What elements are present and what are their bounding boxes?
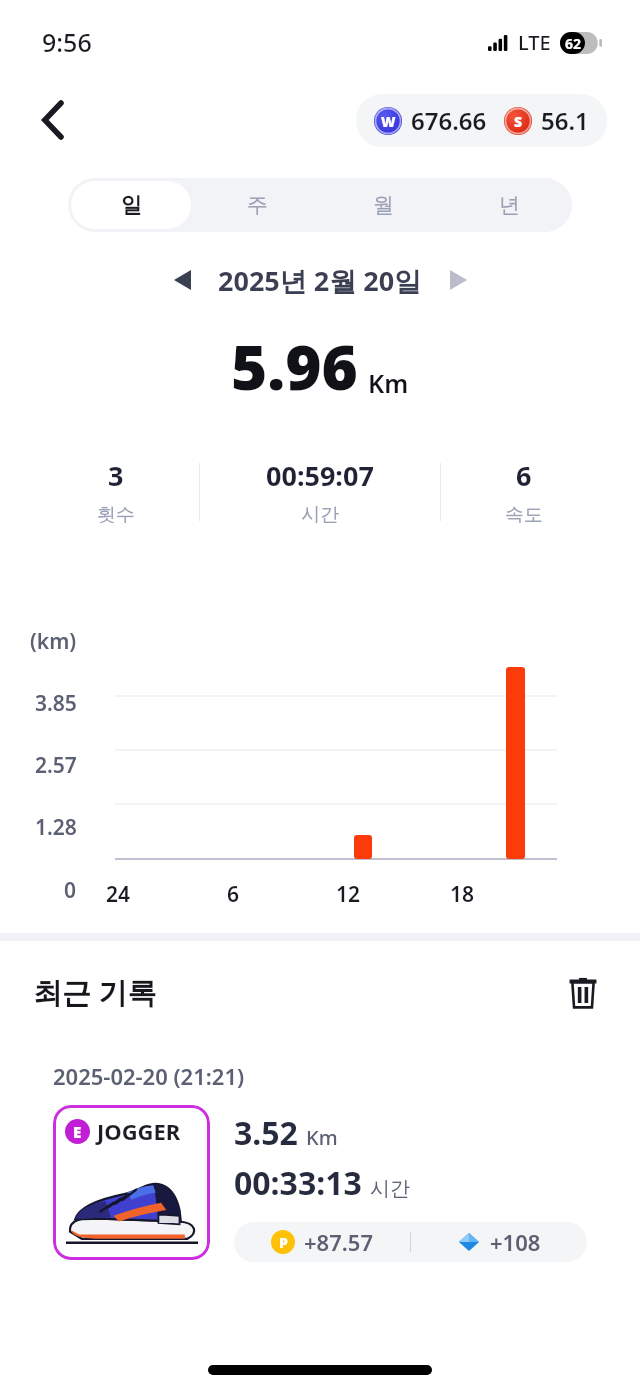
staticText: W: [381, 112, 396, 131]
staticText: E: [73, 1122, 82, 1142]
staticText: 24: [98, 880, 138, 903]
staticText: 일: [121, 192, 142, 218]
staticText: LTE: [518, 29, 551, 56]
button[interactable]: 월: [323, 181, 443, 229]
staticText: 676.66: [411, 104, 487, 137]
staticText: 6: [213, 880, 253, 903]
button[interactable]: 3: [33, 434, 607, 549]
staticText: (km): [30, 627, 77, 656]
staticText: 18: [442, 880, 482, 903]
staticText: 월: [373, 192, 394, 218]
staticText: JOGGER: [97, 1116, 181, 1146]
staticText: 00:33:13: [234, 1161, 362, 1205]
button[interactable]: Back: [28, 94, 80, 146]
staticText: 0: [64, 876, 77, 903]
staticText: 속도: [505, 503, 543, 527]
staticText: 2025년 2월 20일: [218, 262, 422, 299]
staticText: 6: [516, 457, 532, 494]
staticText: Km: [306, 1124, 338, 1151]
staticText: 3: [108, 457, 124, 494]
staticText: 56.1: [541, 104, 589, 137]
staticText: 년: [499, 192, 520, 218]
staticText: P: [279, 1233, 288, 1252]
staticText: 9:56: [42, 25, 92, 59]
staticText: 2025-02-20 (21:21): [53, 1061, 245, 1091]
staticText: 1.28: [35, 813, 77, 842]
staticText: 3.52: [234, 1111, 298, 1155]
button[interactable]: Delete records: [559, 968, 607, 1016]
staticText: 시간: [370, 1176, 410, 1201]
staticText: 62: [565, 34, 582, 53]
button[interactable]: 일: [71, 181, 191, 229]
staticText: +108: [490, 1227, 541, 1257]
staticText: 횟수: [97, 503, 135, 527]
staticText: 5.96: [231, 324, 358, 408]
staticText: 00:59:07: [266, 457, 374, 494]
staticText: 시간: [301, 503, 339, 527]
button[interactable]: Next day: [436, 258, 480, 302]
staticText: Km: [368, 366, 409, 400]
staticText: 2.57: [35, 751, 77, 780]
button[interactable]: 주: [197, 181, 317, 229]
button[interactable]: W: [356, 94, 607, 147]
staticText: S: [514, 112, 523, 131]
button[interactable]: E: [53, 1105, 210, 1260]
staticText: 주: [247, 192, 268, 218]
button[interactable]: P: [234, 1222, 587, 1262]
button[interactable]: 년: [449, 181, 569, 229]
staticText: 3.85: [35, 689, 77, 718]
staticText: 12: [328, 880, 368, 903]
staticText: 최근 기록: [33, 972, 157, 1012]
button[interactable]: 2025-02-20 (21:21): [33, 1041, 607, 1278]
staticText: +87.57: [304, 1227, 373, 1257]
button[interactable]: Previous day: [160, 258, 204, 302]
